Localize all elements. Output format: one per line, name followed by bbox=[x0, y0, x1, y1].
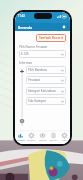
button[interactable]: Sub Kategori bbox=[26, 97, 66, 105]
staticText: 11:43 bbox=[18, 14, 25, 18]
button[interactable]: E-145 bbox=[19, 50, 66, 58]
staticText: Pesawat bbox=[27, 139, 36, 142]
staticText: Sub Kategori bbox=[28, 99, 47, 103]
staticText: Pesawat bbox=[28, 78, 40, 82]
staticText: E-145 bbox=[21, 52, 29, 56]
button[interactable]: Beranda bbox=[15, 131, 26, 144]
staticText: Laporan bbox=[49, 139, 58, 142]
staticText: Pilih Bandara bbox=[28, 68, 47, 72]
staticText: Beranda bbox=[16, 139, 25, 142]
staticText: Pilih Nomor Pesawat bbox=[19, 45, 48, 49]
staticText: Kategori Kerusakan bbox=[28, 89, 56, 93]
button[interactable]: Pesawat bbox=[26, 76, 66, 84]
button[interactable]: Laporan bbox=[48, 131, 59, 144]
button[interactable]: Notifikasi bbox=[61, 24, 67, 30]
staticText: Deteksi bbox=[39, 139, 47, 142]
staticText: Akun bbox=[62, 139, 68, 142]
staticText: Informasi bbox=[19, 61, 33, 65]
staticText: Beranda bbox=[18, 25, 32, 30]
button[interactable]: Deteksi bbox=[37, 131, 48, 144]
button[interactable]: Kategori Kerusakan bbox=[26, 87, 66, 95]
button[interactable]: Pesawat bbox=[26, 131, 37, 144]
staticText: Tambah Record bbox=[39, 36, 63, 40]
button[interactable]: Tambah Record bbox=[36, 34, 66, 42]
button[interactable]: Pilih Bandara bbox=[26, 66, 66, 74]
button[interactable]: Akun bbox=[59, 131, 70, 144]
